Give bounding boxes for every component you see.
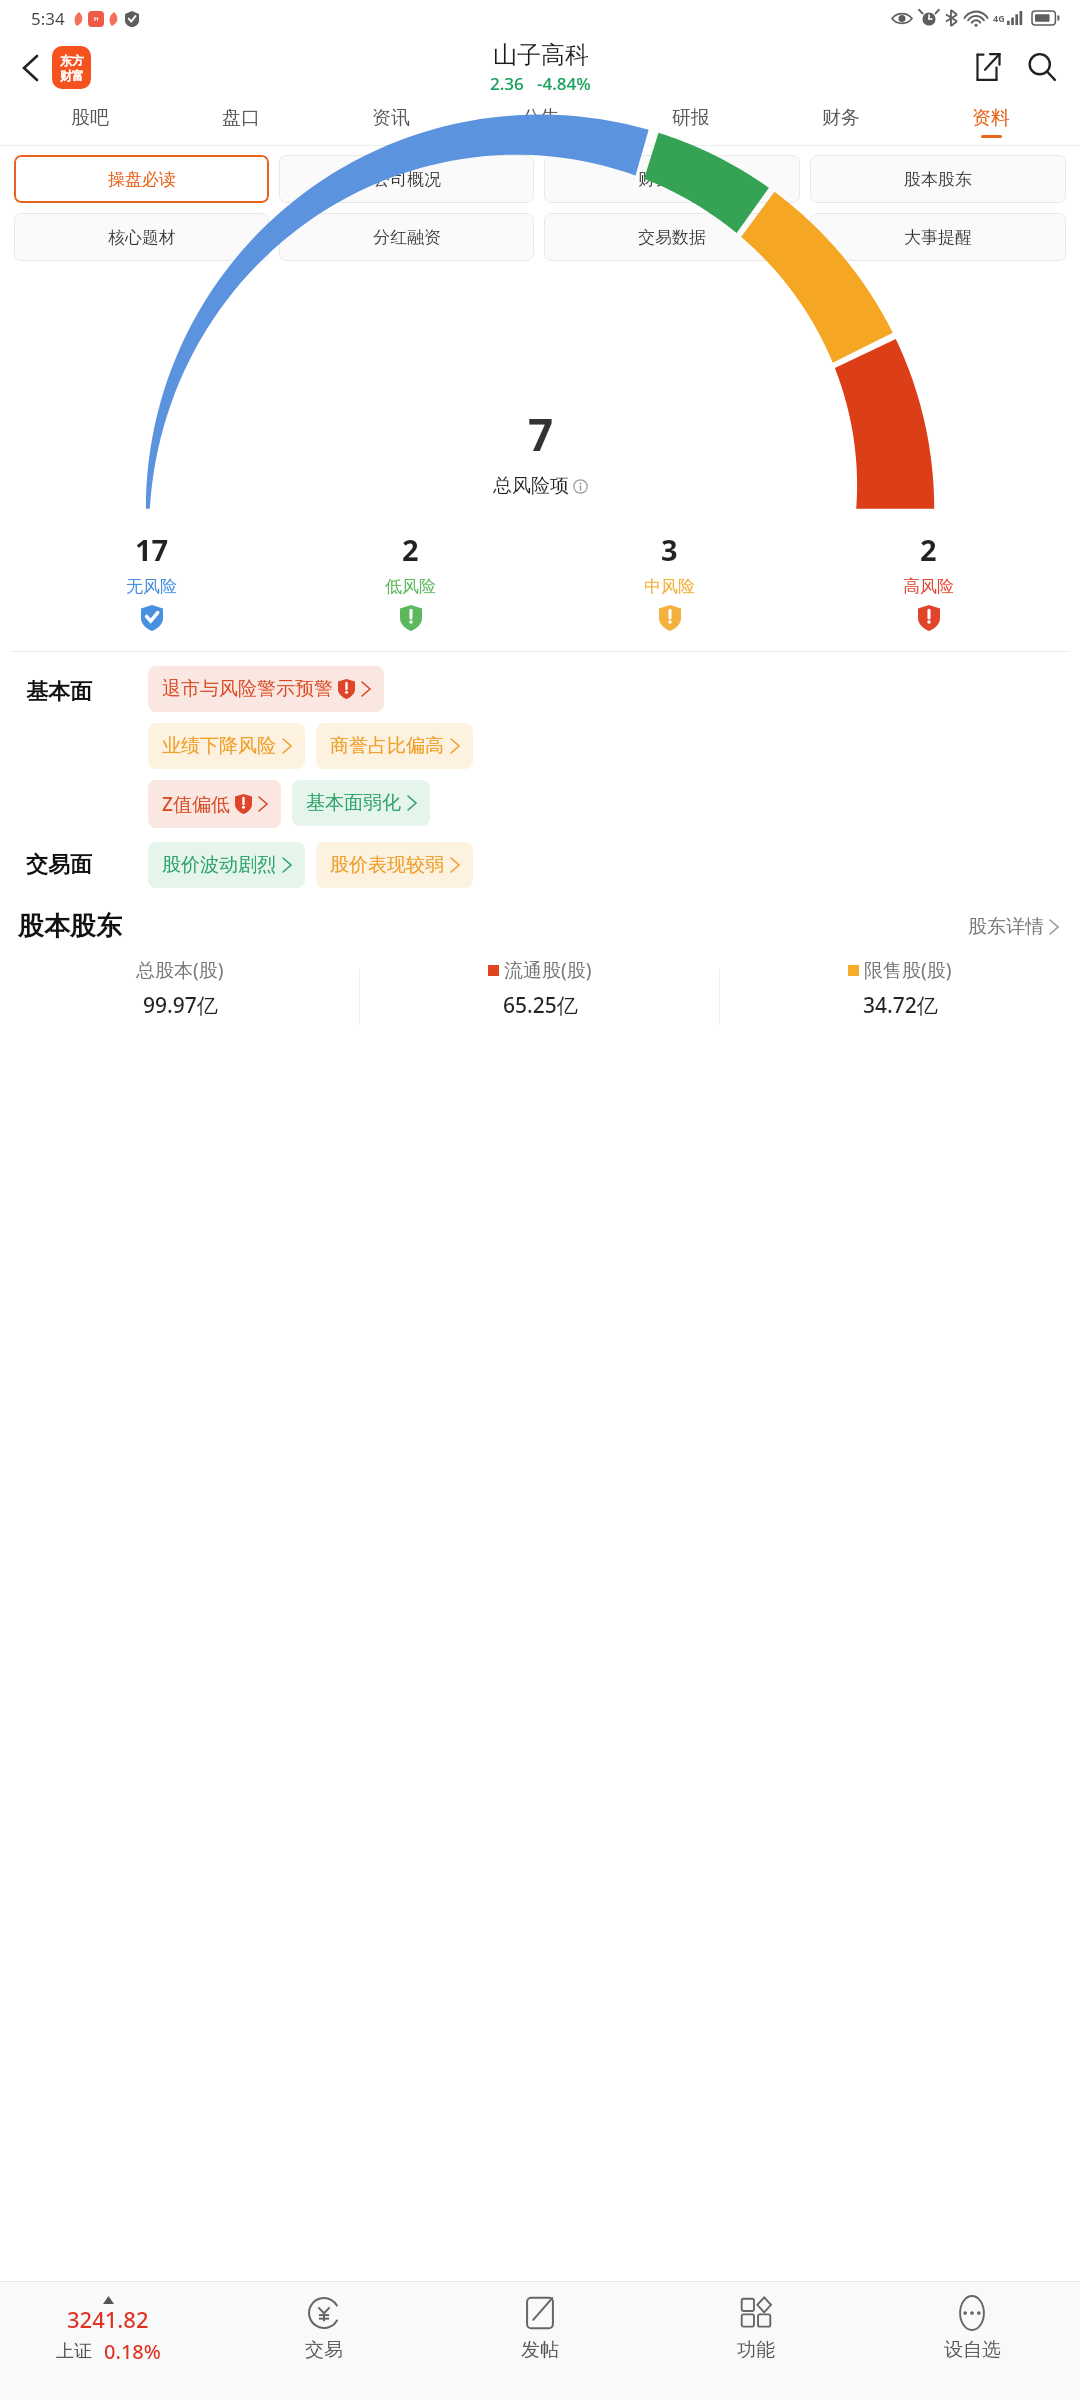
staticText: 交易面 [26,851,92,879]
staticText: 99.97亿 [143,991,218,1020]
button[interactable]: Search [1018,43,1066,91]
staticText: 大事提醒 [904,227,972,248]
button[interactable]: 资讯 [316,98,466,146]
button[interactable]: 东方财富 [52,46,91,89]
staticText: 17 [135,530,169,569]
staticText: 中风险 [644,576,695,597]
staticText: 限售股(股) [864,957,952,983]
staticText: 退市与风险警示预警 [162,677,333,701]
staticText: 股本股东 [18,910,122,943]
staticText: 盘口 [222,106,260,130]
staticText: 基本面弱化 [306,791,401,815]
staticText: 山子高科 [493,40,589,70]
staticText: 股东详情 [968,915,1044,939]
staticText: 2 [920,530,937,569]
button[interactable]: 交易 [216,2282,432,2400]
button[interactable]: 大事提醒 [810,213,1066,261]
button[interactable]: 功能 [648,2282,864,2400]
button[interactable]: 商誉占比偏高 [316,723,473,769]
button[interactable]: Z值偏低 [148,780,281,828]
staticText: 核心题材 [108,227,176,248]
staticText: 资料 [972,106,1010,130]
button[interactable]: 交易数据 [544,213,800,261]
staticText: 资讯 [372,106,410,130]
button[interactable]: 股本股东 [810,155,1066,203]
staticText: 股本股东 [904,169,972,190]
staticText: 商誉占比偏高 [330,734,444,758]
button[interactable]: Back [10,48,50,88]
button[interactable]: 业绩下降风险 [148,723,305,769]
staticText: 设自选 [944,2338,1001,2362]
button[interactable]: 基本面弱化 [292,780,430,826]
staticText: 无风险 [126,576,177,597]
button[interactable]: 17 [22,530,281,631]
staticText: 5:34 [31,7,65,30]
staticText: 基本面 [26,678,92,706]
staticText: 交易 [305,2338,343,2362]
staticText: 公告 [522,106,560,130]
staticText: 财务 [822,106,860,130]
button[interactable]: 公告 [466,98,616,146]
staticText: 股吧 [71,106,109,130]
staticText: 3241.82 [67,2304,149,2334]
staticText: 操盘必读 [108,169,176,190]
staticText: 财务分析 [638,169,706,190]
staticText: 2 [402,530,419,569]
staticText: 发帖 [521,2338,559,2362]
button[interactable]: 财务分析 [544,155,800,203]
button[interactable]: 操盘必读 [14,155,269,203]
staticText: 4G [993,12,1005,24]
button[interactable]: 2 [281,530,540,631]
staticText: 股价表现较弱 [330,853,444,877]
button[interactable]: Share [964,43,1012,91]
staticText: 总股本(股) [136,957,224,983]
button[interactable]: 2 [799,530,1058,631]
staticText: 交易数据 [638,227,706,248]
button[interactable]: 3241.82 [0,2282,216,2400]
button[interactable]: 财务 [766,98,916,146]
staticText: 公司概况 [373,169,441,190]
button[interactable]: 分红融资 [279,213,534,261]
staticText: 功能 [737,2338,775,2362]
staticText: 研报 [672,106,710,130]
staticText: 财富 [60,68,84,83]
staticText: 34.72亿 [863,991,938,1020]
staticText: 0.18% [104,2338,161,2365]
staticText: 流通股(股) [504,957,592,983]
button[interactable]: 盘口 [165,98,316,146]
staticText: 上证 [56,2340,92,2363]
button[interactable]: 资料 [916,98,1066,146]
button[interactable]: 发帖 [432,2282,648,2400]
staticText: 股价波动剧烈 [162,853,276,877]
staticText: 业绩下降风险 [162,734,276,758]
staticText: 低风险 [385,576,436,597]
button[interactable]: 研报 [616,98,766,146]
staticText: Z值偏低 [162,791,230,817]
staticText: 65.25亿 [503,991,578,1020]
button[interactable]: 股东详情 [964,911,1062,943]
staticText: 7 [528,404,554,464]
button[interactable]: 股吧 [14,98,165,146]
button[interactable]: 核心题材 [14,213,269,261]
staticText: 东方 [60,53,84,68]
button[interactable]: 公司概况 [279,155,534,203]
button[interactable]: 设自选 [864,2282,1080,2400]
button[interactable]: 股价表现较弱 [316,842,473,888]
button[interactable]: 3 [540,530,799,631]
staticText: 3 [661,530,678,569]
staticText: H [94,15,99,23]
staticText: -4.84% [537,72,591,95]
staticText: 总风险项 [493,474,569,498]
staticText: 分红融资 [373,227,441,248]
staticText: 2.36 [490,72,524,95]
staticText: 高风险 [903,576,954,597]
button[interactable]: 退市与风险警示预警 [148,666,384,712]
button[interactable]: 股价波动剧烈 [148,842,305,888]
